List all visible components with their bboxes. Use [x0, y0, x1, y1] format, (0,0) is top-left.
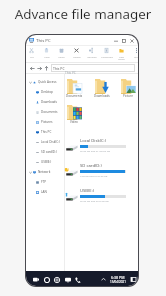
- staticText: Network: [38, 170, 51, 174]
- staticText: LAN: [41, 190, 47, 194]
- staticText: Rename: [87, 55, 97, 58]
- staticText: FTP: [41, 180, 47, 184]
- staticText: This PC: [53, 66, 65, 71]
- button[interactable]: Taskbar item 1: [42, 271, 52, 286]
- button[interactable]: Cut: [26, 46, 39, 63]
- button[interactable]: Paste: [54, 46, 69, 63]
- button[interactable]: Up: [42, 63, 50, 73]
- staticText: Quick Access: [38, 80, 57, 84]
- staticText: USB(E:): [41, 160, 52, 164]
- staticText: Pictures: [41, 120, 53, 124]
- button[interactable]: USB(E:): [64, 188, 126, 210]
- button[interactable]: Network: [26, 167, 63, 177]
- button[interactable]: This PC: [53, 64, 135, 72]
- button[interactable]: Copy: [39, 46, 54, 63]
- button[interactable]: Picture: [117, 78, 138, 98]
- staticText: Copy: [44, 55, 50, 58]
- staticText: USB(E:): [80, 188, 95, 194]
- button[interactable]: Taskbar item 0: [31, 271, 41, 286]
- staticText: Documents: [66, 94, 83, 98]
- staticText: Cut: [30, 55, 34, 58]
- button[interactable]: SD card(D:): [64, 163, 126, 185]
- staticText: More: [134, 55, 138, 58]
- button[interactable]: min: [112, 36, 120, 45]
- staticText: New folder: [118, 55, 125, 61]
- button[interactable]: Action center: [129, 271, 138, 286]
- staticText: Downloads: [41, 100, 57, 104]
- button[interactable]: Downloads: [91, 78, 113, 98]
- button[interactable]: SD card(D:): [26, 147, 63, 157]
- staticText: 25.50 GB free of 64.00 GB: [80, 199, 109, 202]
- staticText: 6:38 PM: [111, 275, 125, 280]
- button[interactable]: Delete: [69, 46, 84, 63]
- staticText: 25.50 GB free of 128.00 GB: [80, 149, 111, 152]
- button[interactable]: Desktop: [26, 87, 63, 97]
- button[interactable]: Back: [28, 63, 36, 73]
- staticText: Documents: [41, 110, 58, 114]
- button[interactable]: max: [120, 36, 128, 45]
- button[interactable]: New folder: [114, 46, 129, 63]
- staticText: Delete: [73, 55, 81, 58]
- button[interactable]: Local Disk(C:): [64, 138, 126, 160]
- staticText: Local Disk(C:): [41, 140, 60, 144]
- button[interactable]: Downloads: [26, 97, 63, 107]
- button[interactable]: close: [128, 36, 136, 45]
- button[interactable]: Properties: [99, 46, 114, 63]
- button[interactable]: Local Disk(C:): [26, 137, 63, 147]
- staticText: Picture: [123, 94, 133, 98]
- button[interactable]: Forward: [35, 63, 43, 73]
- button[interactable]: Taskbar item 3: [63, 271, 73, 286]
- button[interactable]: Taskbar item 2: [52, 271, 62, 286]
- button[interactable]: More: [129, 46, 138, 63]
- staticText: Advance file manager: [0, 5, 166, 23]
- staticText: SD card(D:): [41, 150, 57, 154]
- button[interactable]: Documents: [63, 78, 85, 98]
- button[interactable]: Pictures: [26, 117, 63, 127]
- button[interactable]: Quick Access: [26, 77, 63, 87]
- staticText: 15/04/2021: [110, 280, 126, 284]
- button[interactable]: Show hidden icons: [99, 271, 108, 286]
- button[interactable]: Video: [63, 104, 85, 124]
- staticText: Properties: [101, 55, 113, 58]
- button[interactable]: This PC: [26, 127, 63, 137]
- staticText: This PC: [65, 71, 76, 75]
- staticText: This PC: [36, 37, 51, 43]
- staticText: Desktop: [41, 90, 53, 94]
- staticText: Downloads: [94, 94, 110, 98]
- staticText: This PC: [41, 130, 52, 134]
- staticText: Paste: [58, 55, 65, 58]
- button[interactable]: FTP: [26, 177, 63, 187]
- staticText: Video: [70, 120, 78, 124]
- button[interactable]: Taskbar item 4: [73, 271, 83, 286]
- staticText: 4.00 GB free of 32.00 GB: [80, 174, 108, 177]
- staticText: SD card(D:): [80, 163, 102, 169]
- button[interactable]: USB(E:): [26, 157, 63, 167]
- button[interactable]: Documents: [26, 107, 63, 117]
- button[interactable]: LAN: [26, 187, 63, 197]
- staticText: Local Disk(C:): [80, 138, 106, 144]
- button[interactable]: 6:38 PM: [108, 271, 128, 286]
- button[interactable]: Rename: [84, 46, 99, 63]
